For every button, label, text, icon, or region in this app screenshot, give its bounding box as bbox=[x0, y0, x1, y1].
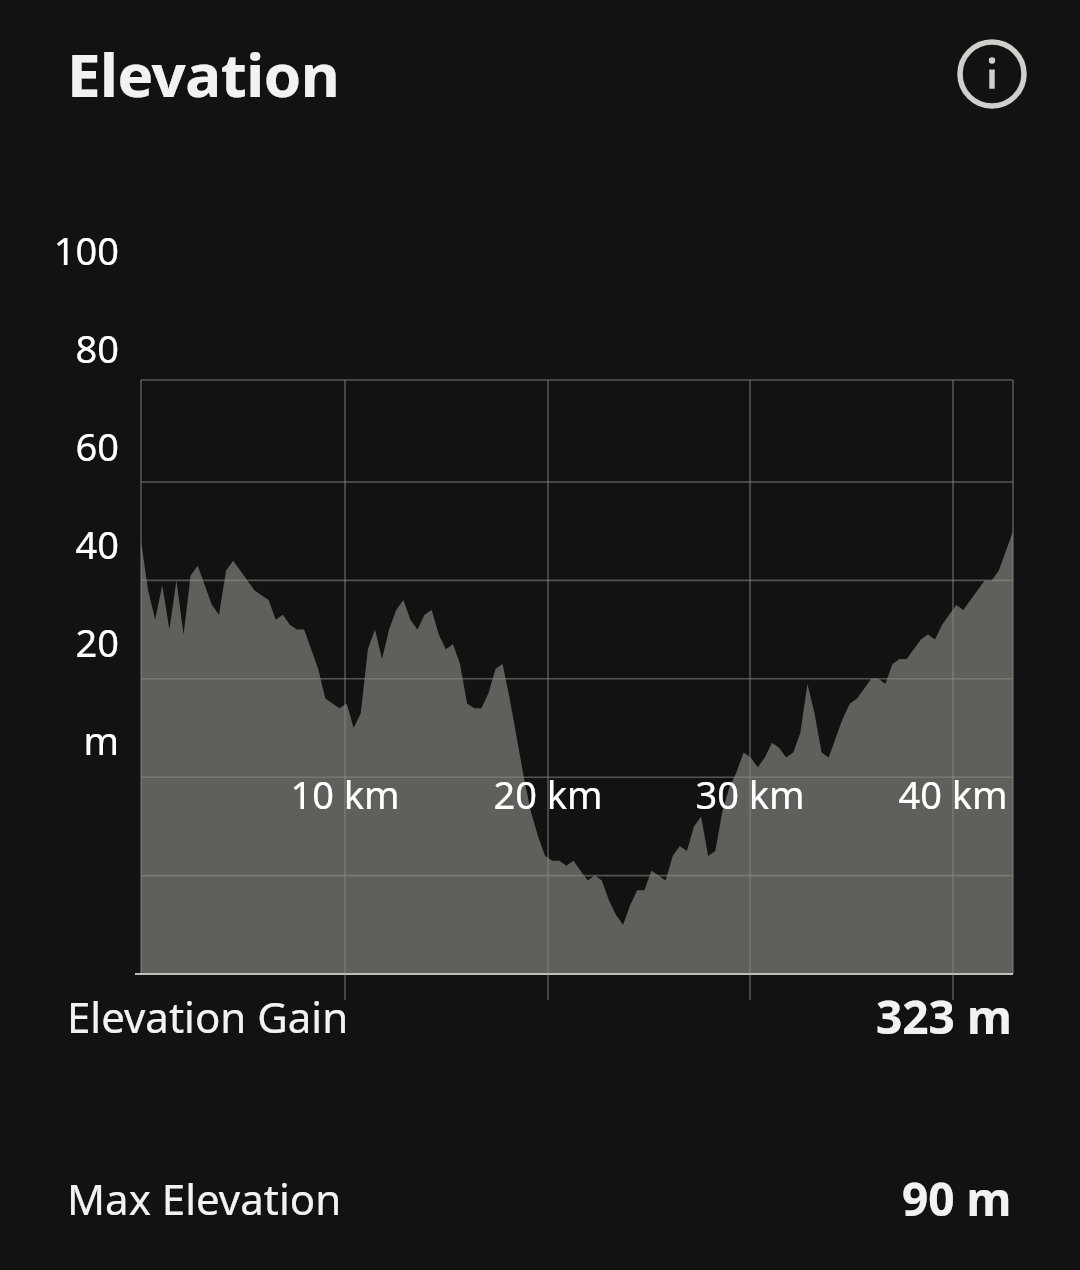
staticText: 20 bbox=[75, 616, 119, 668]
staticText: 80 bbox=[75, 322, 119, 374]
staticText: 40 bbox=[75, 518, 119, 570]
staticText: 30 km bbox=[695, 768, 805, 820]
staticText: Elevation bbox=[67, 33, 340, 115]
staticText: 60 bbox=[75, 420, 119, 472]
button[interactable]: Max Elevation bbox=[0, 1150, 1080, 1246]
button[interactable]: Info bbox=[956, 38, 1028, 110]
staticText: 90 m bbox=[902, 1167, 1012, 1230]
staticText: 100 bbox=[53, 224, 119, 276]
staticText: m bbox=[83, 714, 119, 766]
staticText: 40 km bbox=[898, 768, 1008, 820]
staticText: Elevation Gain bbox=[67, 988, 349, 1045]
staticText: Max Elevation bbox=[67, 1170, 342, 1227]
staticText: 323 m bbox=[876, 985, 1012, 1048]
staticText: 10 km bbox=[290, 768, 400, 820]
staticText: 20 km bbox=[493, 768, 603, 820]
button[interactable]: Elevation Gain bbox=[0, 968, 1080, 1064]
